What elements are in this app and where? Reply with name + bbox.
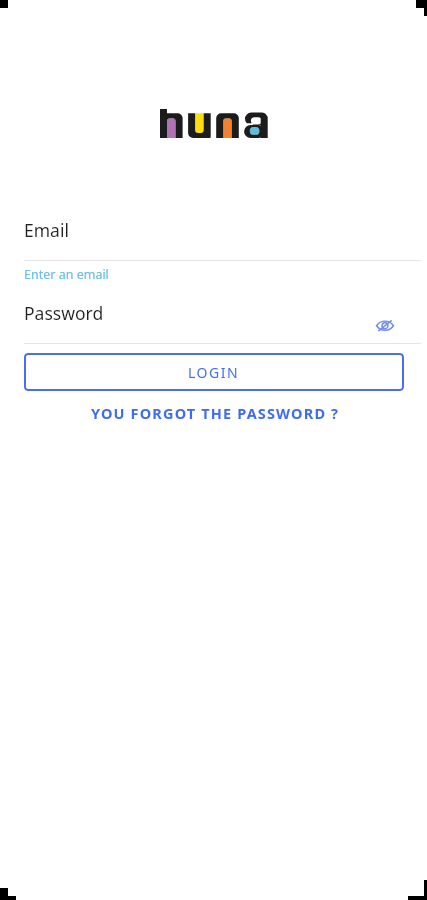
staticText: Email <box>24 218 69 242</box>
button[interactable]: LOGIN <box>24 353 404 391</box>
button[interactable]: YOU FORGOT THE PASSWORD ? <box>79 400 348 426</box>
staticText: Enter an email <box>24 266 109 283</box>
staticText: LOGIN <box>188 363 240 382</box>
staticText: Password <box>24 301 104 325</box>
button[interactable]: Show password <box>373 313 397 337</box>
staticText: YOU FORGOT THE PASSWORD ? <box>91 403 340 423</box>
